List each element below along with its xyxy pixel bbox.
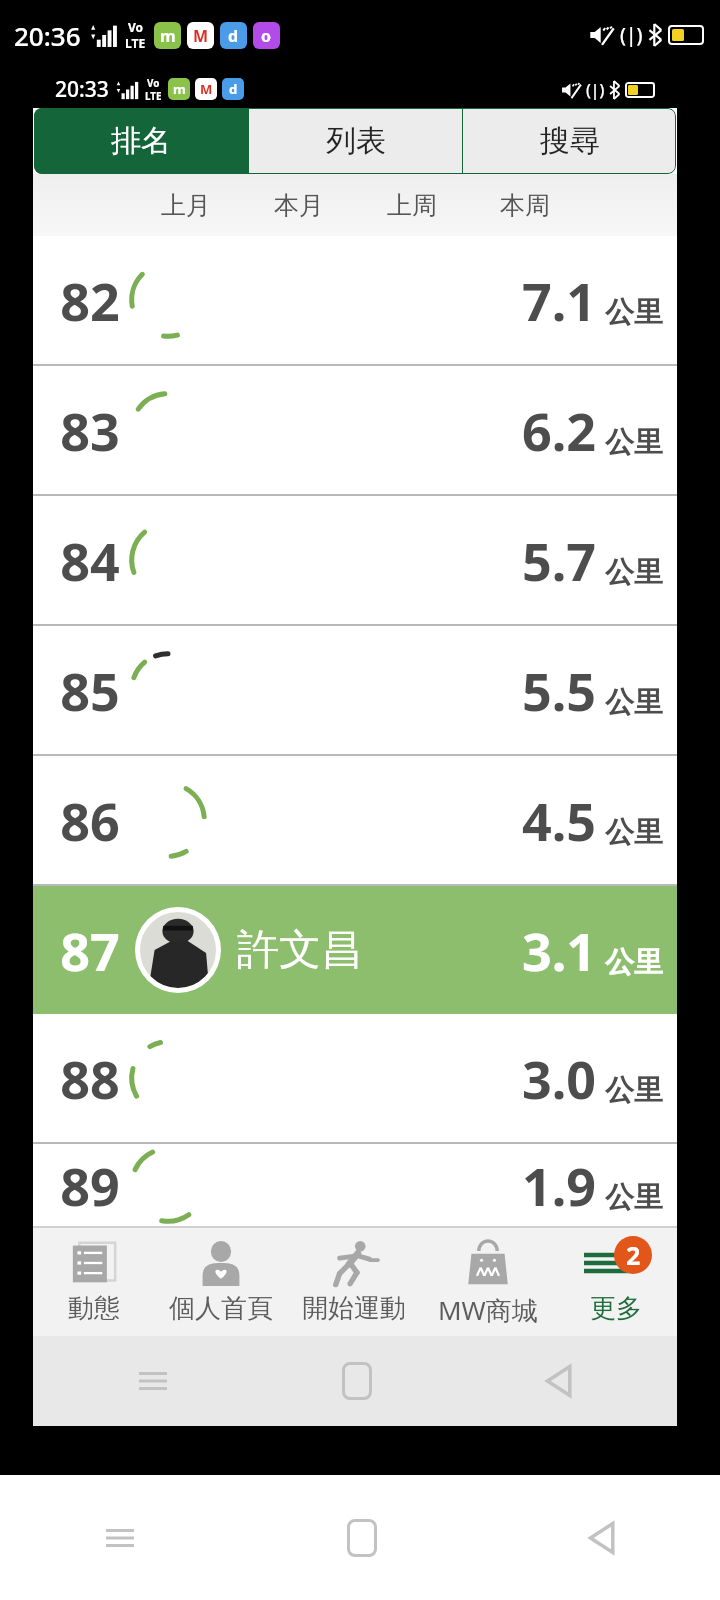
- staticText: 4.5: [522, 785, 597, 856]
- staticText: 公里: [605, 814, 663, 851]
- other: MW商城: [465, 1240, 511, 1286]
- staticText: d: [228, 25, 239, 47]
- staticText: 20:36: [14, 18, 81, 53]
- button[interactable]: 86: [33, 756, 677, 884]
- staticText: o: [261, 25, 272, 47]
- other: 動態: [71, 1240, 117, 1286]
- button[interactable]: 88: [33, 1014, 677, 1142]
- button[interactable]: 動態: [33, 1228, 154, 1336]
- staticText: 上周: [387, 190, 437, 221]
- staticText: 公里: [605, 684, 663, 721]
- staticText: 2: [626, 1238, 641, 1272]
- staticText: d: [229, 80, 238, 98]
- other: Home: [347, 1519, 377, 1557]
- staticText: 搜尋: [540, 122, 600, 160]
- other: Back: [584, 1519, 620, 1557]
- button[interactable]: 搜尋: [463, 108, 676, 174]
- button[interactable]: 85: [33, 626, 677, 754]
- staticText: 86: [45, 785, 135, 856]
- other: Recents: [133, 1366, 173, 1396]
- button[interactable]: 上周: [355, 174, 468, 236]
- button[interactable]: 84: [33, 496, 677, 624]
- staticText: 3.0: [522, 1043, 597, 1114]
- staticText: LTE: [145, 89, 162, 102]
- staticText: m: [160, 25, 176, 47]
- button[interactable]: 87: [33, 886, 677, 1014]
- staticText: 公里: [605, 294, 663, 331]
- staticText: 公里: [605, 424, 663, 461]
- staticText: 6.2: [522, 395, 597, 466]
- staticText: 5.5: [522, 655, 597, 726]
- staticText: 公里: [605, 1072, 663, 1109]
- staticText: 3.1: [522, 915, 597, 986]
- button[interactable]: 列表: [249, 108, 462, 174]
- button[interactable]: 89: [33, 1144, 677, 1226]
- staticText: 84: [45, 525, 135, 596]
- staticText: 82: [45, 265, 135, 336]
- staticText: 個人首頁: [169, 1292, 273, 1325]
- staticText: 公里: [605, 944, 663, 981]
- staticText: 5.7: [522, 525, 597, 596]
- staticText: 排名: [111, 122, 171, 160]
- staticText: 本月: [274, 190, 324, 221]
- staticText: 公里: [605, 1179, 663, 1216]
- button[interactable]: 個人首頁: [154, 1228, 287, 1336]
- other: Back: [541, 1362, 577, 1400]
- button[interactable]: 更多: [555, 1228, 677, 1336]
- other: 個人首頁: [198, 1240, 244, 1286]
- staticText: LTE: [125, 35, 146, 51]
- other: Recents: [100, 1523, 140, 1553]
- staticText: 更多: [590, 1292, 642, 1325]
- staticText: 85: [45, 655, 135, 726]
- staticText: 7.1: [522, 265, 597, 336]
- staticText: 89: [45, 1150, 135, 1221]
- staticText: 開始運動: [302, 1292, 406, 1325]
- staticText: m: [173, 80, 186, 98]
- staticText: MW商城: [438, 1292, 538, 1328]
- staticText: 許文昌: [237, 924, 363, 977]
- button[interactable]: 上月: [129, 174, 242, 236]
- staticText: 87: [45, 915, 135, 986]
- staticText: 動態: [68, 1292, 120, 1325]
- button[interactable]: MW商城: [421, 1228, 555, 1336]
- button[interactable]: 本周: [468, 174, 581, 236]
- staticText: 83: [45, 395, 135, 466]
- staticText: M: [193, 25, 209, 47]
- staticText: 列表: [326, 122, 386, 160]
- staticText: Vo: [147, 76, 160, 89]
- other: 更多: [584, 1238, 648, 1288]
- button[interactable]: 開始運動: [287, 1228, 421, 1336]
- staticText: (|): [620, 22, 643, 48]
- staticText: Vo: [128, 19, 144, 35]
- staticText: 上月: [161, 190, 211, 221]
- button[interactable]: 本月: [242, 174, 355, 236]
- button[interactable]: 82: [33, 236, 677, 364]
- staticText: 公里: [605, 554, 663, 591]
- staticText: M: [200, 80, 213, 98]
- other: 開始運動: [330, 1239, 378, 1287]
- button[interactable]: 83: [33, 366, 677, 494]
- other: Home: [342, 1362, 372, 1400]
- staticText: 20:33: [55, 75, 109, 104]
- button[interactable]: 排名: [34, 108, 248, 174]
- staticText: 本周: [500, 190, 550, 221]
- staticText: 1.9: [522, 1150, 597, 1221]
- staticText: 88: [45, 1043, 135, 1114]
- staticText: (|): [586, 79, 605, 100]
